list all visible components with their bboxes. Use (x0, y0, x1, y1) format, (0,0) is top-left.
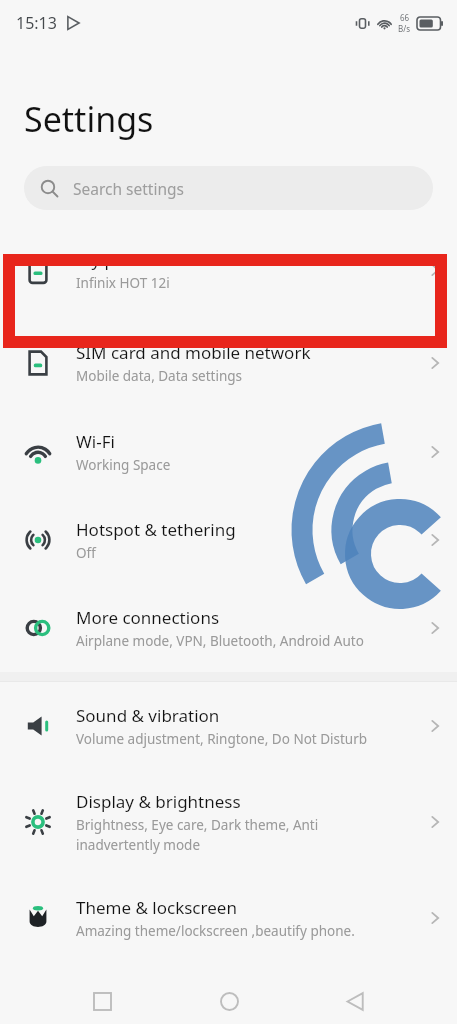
staticText: Wi-Fi (76, 430, 115, 453)
staticText: More connections (76, 606, 220, 629)
staticText: Sound & vibration (76, 704, 220, 727)
staticText: Amazing theme/lockscreen ,beautify phone… (76, 922, 355, 940)
button[interactable]: Display & brightness (0, 770, 457, 874)
button[interactable]: Theme & lockscreen (0, 874, 457, 962)
staticText: Working Space (76, 456, 171, 474)
button[interactable]: My phone (0, 222, 457, 318)
staticText: Off (76, 544, 96, 562)
staticText: My phone (76, 248, 156, 271)
staticText: Volume adjustment, Ringtone, Do Not Dist… (76, 730, 368, 748)
staticText: Theme & lockscreen (76, 896, 237, 919)
staticText: Mobile data, Data settings (76, 367, 243, 385)
button[interactable]: Home (205, 978, 253, 1024)
button[interactable]: Back (331, 978, 379, 1024)
staticText: Infinix HOT 12i (76, 274, 170, 292)
button[interactable]: SIM card and mobile network (0, 318, 457, 408)
staticText: Settings (24, 96, 154, 142)
staticText: 15:13 (16, 12, 57, 34)
staticText: SIM card and mobile network (76, 341, 311, 364)
button[interactable]: Hotspot & tethering (0, 496, 457, 584)
button[interactable]: More connections (0, 584, 457, 672)
staticText: B/s (398, 23, 411, 34)
button[interactable]: Recent apps (78, 978, 126, 1024)
staticText: 66 (400, 12, 410, 23)
staticText: Hotspot & tethering (76, 518, 236, 541)
staticText: Airplane mode, VPN, Bluetooth, Android A… (76, 632, 364, 650)
staticText: Search settings (73, 178, 184, 199)
staticText: Display & brightness (76, 790, 241, 813)
button[interactable]: Sound & vibration (0, 682, 457, 770)
button[interactable]: Wi-Fi (0, 408, 457, 496)
staticText: Brightness, Eye care, Dark theme, Anti i… (76, 816, 319, 854)
button[interactable]: Search settings (24, 166, 433, 210)
